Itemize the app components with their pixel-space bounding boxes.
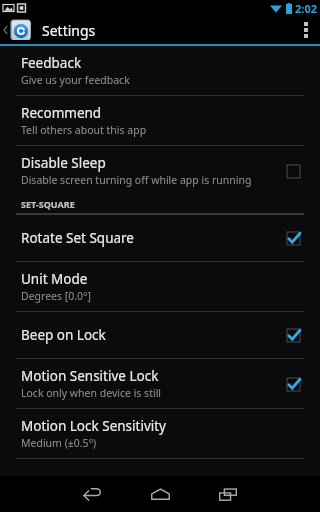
staticText: 2:02 [295,1,317,16]
staticText: Degrees [0.0°] [21,289,92,303]
button[interactable]: Motion Sensitive Lock, checked [278,369,308,399]
staticText: Unit Mode [21,270,88,288]
button[interactable]: More options [296,16,316,44]
button[interactable]: Disable Sleep [0,146,320,195]
button[interactable]: Home [131,476,189,512]
staticText: Disable Sleep [21,154,106,172]
staticText: Disable screen turning off while app is … [21,173,252,187]
button[interactable]: Feedback [0,46,320,95]
button[interactable]: Navigate up [2,18,34,42]
staticText: Motion Lock Sensitivity [21,417,167,435]
button[interactable]: Unit Mode [0,262,320,311]
staticText: Motion Sensitive Lock [21,367,159,385]
button[interactable]: Beep on Lock, checked [278,320,308,350]
button[interactable]: Rotate Set Square, checked [278,223,308,253]
staticText: Medium (±0.5°) [21,436,97,450]
button[interactable]: Beep on Lock [0,312,320,358]
button[interactable]: Motion Sensitive Lock [0,359,320,408]
staticText: Lock only when device is still [21,386,162,400]
button[interactable]: Recent apps [199,476,257,512]
button[interactable]: Motion Lock Sensitivity [0,409,320,458]
staticText: Recommend [21,104,102,122]
staticText: Give us your feedback [21,73,130,87]
button[interactable]: Disable Sleep, not checked [278,156,308,186]
staticText: Rotate Set Square [21,229,134,247]
staticText: Feedback [21,54,82,72]
staticText: Settings [42,21,96,40]
button[interactable]: Rotate Set Square [0,215,320,261]
staticText: Tell others about this app [21,123,147,137]
staticText: Beep on Lock [21,326,106,344]
staticText: SET-SQUARE [21,198,75,210]
button[interactable]: Recommend [0,96,320,145]
button[interactable]: Back [63,476,121,512]
